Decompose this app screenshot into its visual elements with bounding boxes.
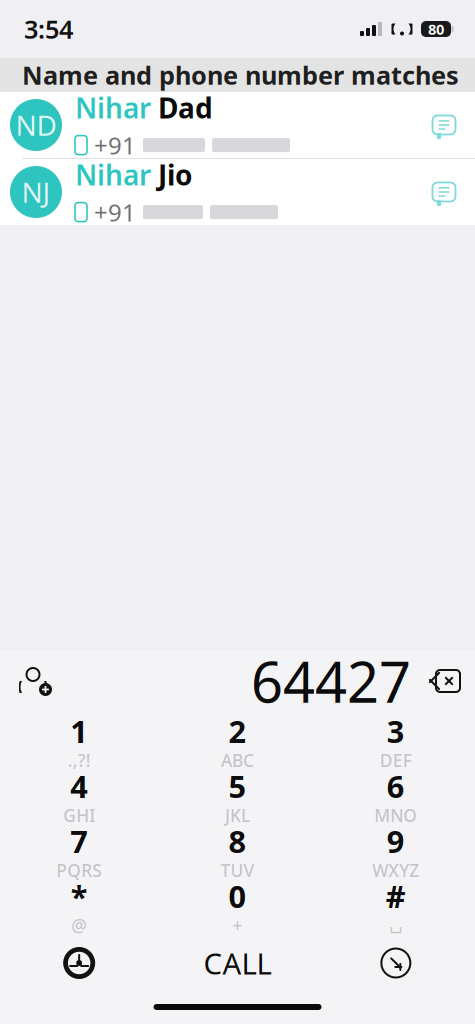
staticText: DEF	[380, 749, 412, 772]
button[interactable]: Hide keypad	[317, 936, 475, 990]
staticText: 80	[428, 19, 444, 39]
staticText: NJ	[21, 173, 50, 211]
button[interactable]: #	[317, 877, 475, 932]
staticText: 3	[387, 711, 405, 751]
staticText: ⌴	[390, 908, 402, 943]
staticText: 7	[70, 821, 88, 861]
staticText: @	[71, 914, 87, 937]
staticText: +91	[94, 129, 136, 161]
button[interactable]: 1	[0, 712, 158, 767]
staticText: MNO	[374, 804, 417, 827]
staticText: WXYZ	[372, 859, 419, 882]
staticText: ABC	[221, 749, 254, 772]
staticText: +91	[94, 196, 136, 228]
staticText: 6	[387, 766, 405, 806]
staticText: 9	[387, 821, 405, 861]
staticText: +	[232, 914, 242, 937]
button[interactable]: 8	[158, 822, 317, 877]
button[interactable]: Delete	[411, 655, 475, 707]
staticText: #	[386, 876, 406, 916]
staticText: 0	[228, 876, 246, 916]
staticText: JKL	[225, 804, 250, 827]
button[interactable]: 2	[158, 712, 317, 767]
button[interactable]: 3	[317, 712, 475, 767]
button[interactable]: ND	[0, 92, 475, 158]
staticText: ND	[15, 106, 56, 144]
staticText: 5	[228, 766, 246, 806]
staticText: 1	[70, 711, 88, 751]
staticText: 3:54	[24, 12, 73, 46]
button[interactable]: CALL	[158, 936, 317, 990]
staticText: 4	[70, 766, 88, 806]
staticText: Dad	[151, 89, 213, 126]
staticText: Name and phone number matches	[22, 58, 459, 92]
staticText: .,?!	[68, 749, 91, 772]
staticText: *	[71, 876, 88, 916]
staticText: PQRS	[56, 859, 102, 882]
button[interactable]: Add contact	[0, 655, 64, 707]
button[interactable]: *	[0, 877, 158, 932]
staticText: GHI	[63, 804, 95, 827]
button[interactable]: 7	[0, 822, 158, 877]
staticText: 8	[228, 821, 246, 861]
staticText: Nihar	[75, 89, 151, 126]
button[interactable]: NJ	[0, 159, 475, 225]
button[interactable]: 0	[158, 877, 317, 932]
staticText: TUV	[220, 859, 254, 882]
button[interactable]: Settings	[0, 936, 158, 990]
staticText: Jio	[151, 156, 193, 193]
button[interactable]: 6	[317, 767, 475, 822]
staticText: CALL	[203, 943, 271, 982]
button[interactable]: 5	[158, 767, 317, 822]
staticText: 64427	[251, 644, 411, 718]
staticText: 2	[228, 711, 246, 751]
button[interactable]: 4	[0, 767, 158, 822]
button[interactable]: 9	[317, 822, 475, 877]
staticText: Nihar	[75, 156, 151, 193]
